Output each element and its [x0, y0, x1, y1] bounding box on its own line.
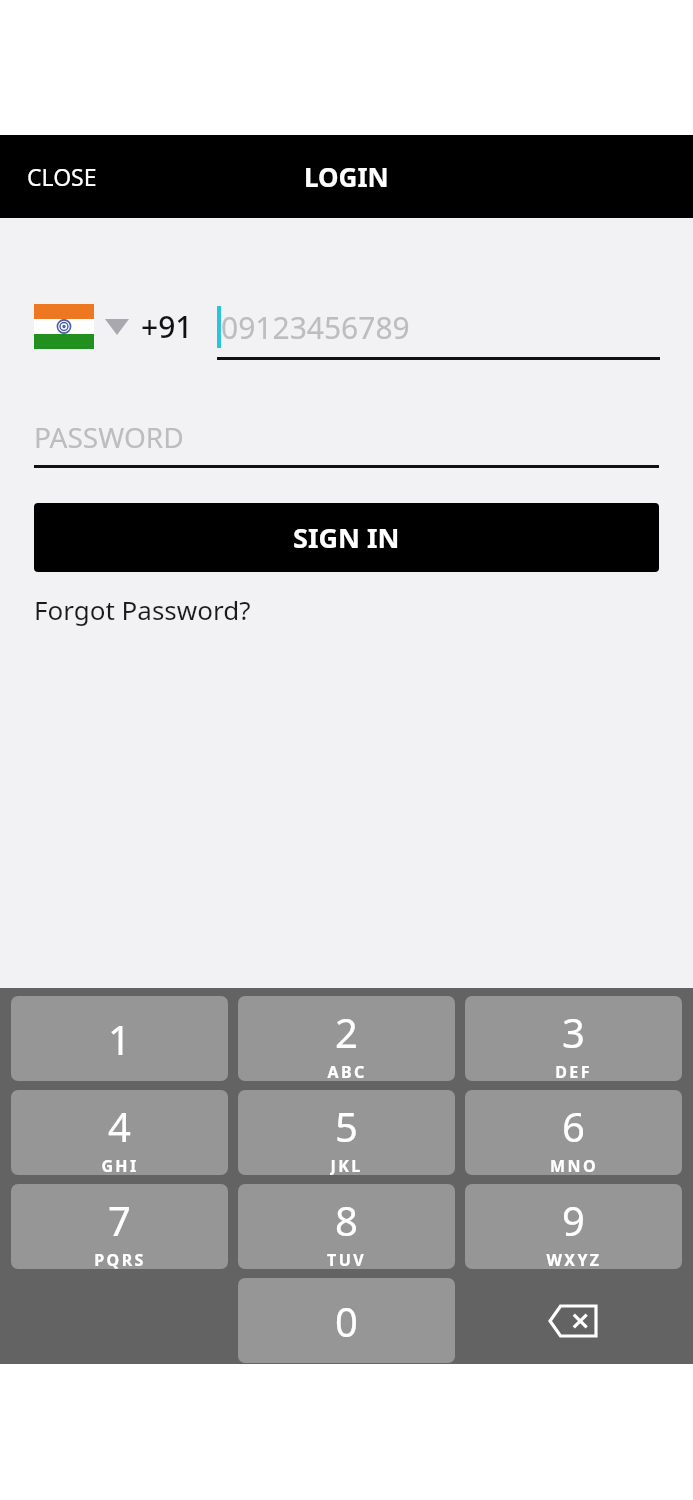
button[interactable]: 6: [465, 1090, 682, 1175]
staticText: 1: [108, 1012, 131, 1066]
button[interactable]: 7: [11, 1184, 228, 1269]
button[interactable]: 1: [11, 996, 228, 1081]
staticText: 7: [108, 1193, 131, 1247]
staticText: GHI: [101, 1155, 139, 1175]
button[interactable]: Backspace: [465, 1278, 682, 1363]
staticText: 3: [562, 1005, 585, 1059]
staticText: 5: [335, 1099, 358, 1153]
staticText: TUV: [327, 1249, 366, 1269]
button[interactable]: Forgot Password?: [34, 586, 251, 633]
button[interactable]: 09123456789: [217, 293, 660, 360]
staticText: PQRS: [94, 1249, 146, 1269]
staticText: 0: [335, 1294, 358, 1348]
staticText: ABC: [327, 1061, 367, 1081]
button[interactable]: CLOSE: [12, 151, 112, 202]
button[interactable]: PASSWORD: [34, 406, 659, 468]
staticText: +91: [141, 306, 193, 347]
staticText: CLOSE: [27, 161, 97, 192]
staticText: WXYZ: [546, 1249, 602, 1269]
button[interactable]: 2: [238, 996, 455, 1081]
staticText: 2: [335, 1005, 358, 1059]
staticText: MNO: [550, 1155, 598, 1175]
button[interactable]: 0: [238, 1278, 455, 1363]
staticText: SIGN IN: [293, 519, 400, 556]
button[interactable]: 3: [465, 996, 682, 1081]
button[interactable]: 4: [11, 1090, 228, 1175]
staticText: 9: [562, 1193, 585, 1247]
button[interactable]: 9: [465, 1184, 682, 1269]
staticText: 09123456789: [221, 307, 410, 348]
staticText: 8: [335, 1193, 358, 1247]
staticText: JKL: [330, 1155, 363, 1175]
button[interactable]: 5: [238, 1090, 455, 1175]
staticText: 4: [108, 1099, 131, 1153]
button[interactable]: 8: [238, 1184, 455, 1269]
button[interactable]: Select country code: [34, 304, 129, 349]
staticText: DEF: [555, 1061, 592, 1081]
staticText: 6: [562, 1099, 585, 1153]
button[interactable]: SIGN IN: [34, 503, 659, 572]
staticText: PASSWORD: [34, 418, 184, 456]
staticText: Forgot Password?: [34, 592, 251, 627]
staticText: LOGIN: [304, 159, 389, 194]
